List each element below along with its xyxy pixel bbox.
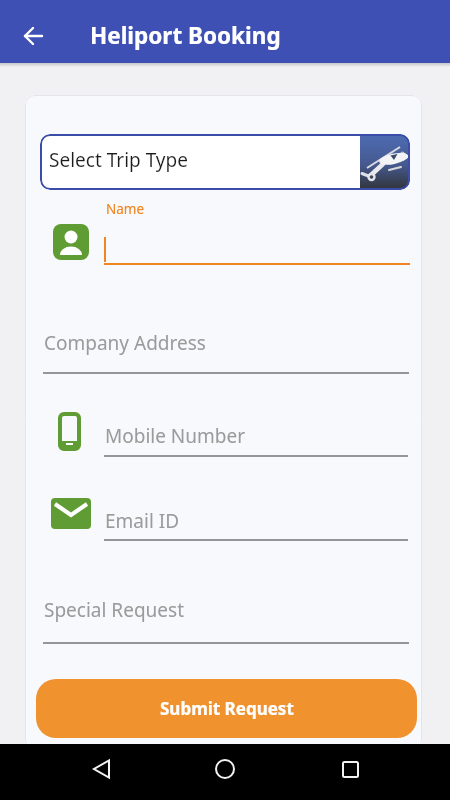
- button[interactable]: [77, 745, 125, 793]
- button[interactable]: [326, 745, 374, 793]
- staticText: Special Request: [44, 597, 184, 623]
- button[interactable]: Select Trip Type: [40, 134, 410, 190]
- staticText: Heliport Booking: [90, 20, 281, 51]
- button[interactable]: Submit Request: [36, 679, 417, 738]
- button[interactable]: [17, 20, 49, 52]
- staticText: Select Trip Type: [49, 147, 188, 173]
- staticText: Submit Request: [160, 697, 294, 720]
- staticText: Name: [106, 200, 145, 218]
- staticText: Company Address: [44, 330, 206, 356]
- staticText: Email ID: [105, 508, 180, 534]
- staticText: Mobile Number: [105, 423, 246, 449]
- button[interactable]: [201, 745, 249, 793]
